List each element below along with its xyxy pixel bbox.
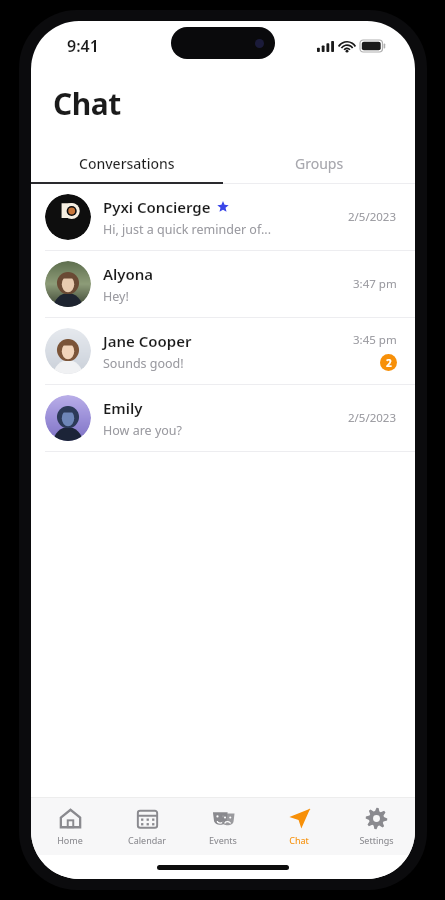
button[interactable]: Conversations: [31, 142, 223, 184]
staticText: 2/5/2023: [348, 410, 397, 426]
staticText: Alyona: [103, 264, 154, 284]
staticText: Sounds good!: [103, 355, 184, 372]
staticText: Calendar: [128, 834, 166, 846]
staticText: Hi, just a quick reminder of...: [103, 221, 272, 238]
staticText: 3:47 pm: [353, 276, 397, 292]
staticText: Events: [209, 834, 237, 846]
staticText: Hey!: [103, 288, 129, 305]
staticText: 3:45 pm: [353, 332, 397, 348]
staticText: 2: [386, 356, 392, 370]
staticText: Groups: [295, 154, 344, 173]
staticText: Jane Cooper: [103, 331, 192, 351]
button[interactable]: Groups: [223, 142, 415, 184]
button[interactable]: Events: [186, 797, 260, 855]
button[interactable]: Settings: [339, 797, 413, 855]
staticText: Home: [57, 834, 83, 846]
button[interactable]: Jane Cooper: [31, 318, 415, 384]
button[interactable]: Calendar: [110, 797, 184, 855]
staticText: Chat: [53, 83, 121, 124]
button[interactable]: Home: [33, 797, 107, 855]
staticText: 9:41: [67, 35, 99, 57]
staticText: Settings: [359, 834, 394, 846]
staticText: Pyxi Concierge: [103, 197, 211, 217]
button[interactable]: Alyona: [31, 251, 415, 317]
staticText: Emily: [103, 398, 143, 418]
button[interactable]: Emily: [31, 385, 415, 451]
button[interactable]: Chat: [262, 797, 336, 855]
staticText: How are you?: [103, 422, 182, 439]
staticText: Chat: [289, 834, 309, 846]
button[interactable]: Pyxi Concierge: [31, 184, 415, 250]
staticText: Conversations: [79, 154, 175, 173]
staticText: 2/5/2023: [348, 209, 397, 225]
